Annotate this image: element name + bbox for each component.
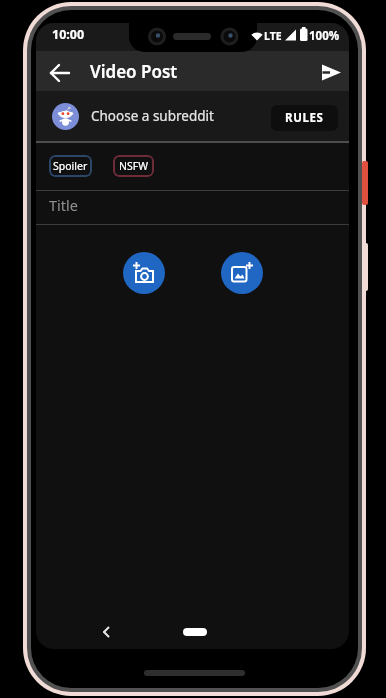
- staticText: Video Post: [90, 60, 178, 83]
- button[interactable]: [183, 628, 207, 636]
- staticText: NSFW: [119, 159, 148, 173]
- button[interactable]: [48, 60, 74, 86]
- button[interactable]: Choose a subreddit: [36, 91, 349, 141]
- button[interactable]: [94, 620, 118, 644]
- button[interactable]: [321, 64, 343, 82]
- button[interactable]: [123, 252, 165, 294]
- button[interactable]: [221, 252, 263, 294]
- staticText: 100%: [309, 28, 340, 44]
- staticText: Choose a subreddit: [91, 107, 214, 125]
- staticText: LTE: [264, 29, 282, 43]
- button[interactable]: RULES: [271, 105, 338, 131]
- button[interactable]: Title: [36, 191, 349, 224]
- staticText: Spoiler: [53, 159, 88, 173]
- button[interactable]: Spoiler: [49, 155, 92, 177]
- staticText: 10:00: [52, 26, 85, 43]
- button[interactable]: NSFW: [113, 155, 154, 177]
- staticText: RULES: [285, 110, 324, 126]
- staticText: Title: [49, 195, 78, 215]
